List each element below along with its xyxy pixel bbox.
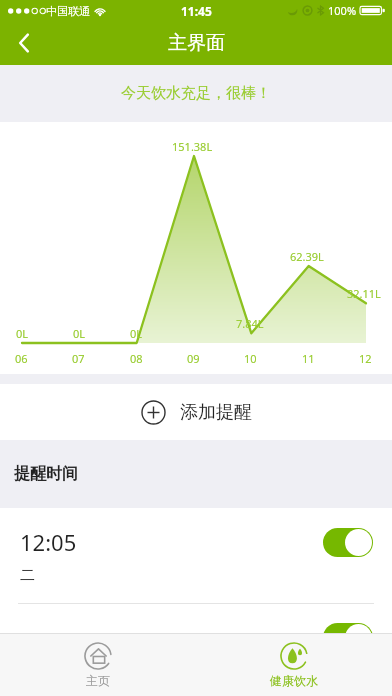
staticText: 100%	[328, 3, 357, 18]
staticText: 主页	[86, 673, 110, 688]
button[interactable]: 健康饮水	[196, 634, 392, 696]
staticText: 添加提醒	[180, 401, 252, 424]
button[interactable]: 12:05	[0, 508, 392, 603]
staticText: 12:05	[20, 527, 77, 557]
button[interactable]: Toggle reminder	[323, 623, 373, 652]
staticText: 11	[302, 351, 315, 366]
staticText: 主界面	[168, 31, 225, 55]
staticText: 二	[20, 566, 35, 585]
button[interactable]: Toggle reminder	[323, 528, 373, 557]
staticText: 提醒时间	[14, 464, 78, 484]
staticText: 12	[359, 351, 372, 366]
staticText: 健康饮水	[270, 673, 318, 688]
staticText: 151.38L	[172, 139, 213, 154]
staticText: 0L	[130, 326, 143, 341]
staticText: 08	[130, 351, 143, 366]
button[interactable]: Back	[0, 21, 48, 65]
staticText: 0L	[73, 326, 86, 341]
staticText: 10	[244, 351, 257, 366]
staticText: 7.84L	[236, 316, 264, 331]
button[interactable]: 主页	[0, 634, 196, 696]
staticText: 0L	[16, 326, 29, 341]
staticText: 07	[72, 351, 85, 366]
staticText: 中国联通	[46, 4, 90, 18]
staticText: 32.11L	[347, 286, 381, 301]
staticText: 09	[187, 351, 200, 366]
staticText: 62.39L	[290, 249, 324, 264]
button[interactable]: 添加提醒	[0, 384, 392, 440]
staticText: 15:10	[20, 631, 77, 661]
staticText: 06	[15, 351, 28, 366]
staticText: 11:45	[181, 3, 212, 19]
button[interactable]: 15:10	[0, 604, 392, 696]
staticText: 今天饮水充足，很棒！	[121, 84, 271, 103]
